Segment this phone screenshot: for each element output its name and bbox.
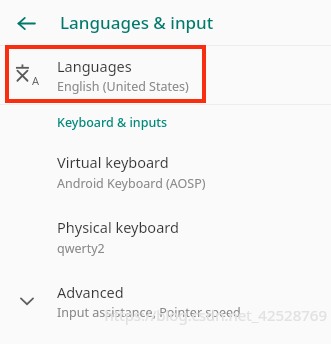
- button[interactable]: A: [0, 46, 331, 104]
- staticText: Keyboard & inputs: [57, 114, 168, 131]
- staticText: Input assistance, Pointer speed: [57, 304, 241, 321]
- button[interactable]: Back: [8, 5, 44, 41]
- staticText: https://blog.csdn.net_42528769: [104, 305, 327, 325]
- staticText: English (United States): [57, 78, 189, 95]
- staticText: Android Keyboard (AOSP): [57, 175, 206, 192]
- staticText: Languages: [57, 56, 132, 76]
- staticText: Languages & input: [60, 11, 214, 34]
- button[interactable]: Physical keyboard: [0, 204, 331, 269]
- staticText: Physical keyboard: [57, 217, 179, 237]
- button[interactable]: Virtual keyboard: [0, 139, 331, 204]
- staticText: Virtual keyboard: [57, 152, 169, 172]
- staticText: A: [32, 73, 40, 88]
- staticText: Advanced: [57, 282, 124, 302]
- button[interactable]: Advanced: [0, 269, 331, 333]
- staticText: qwerty2: [57, 240, 105, 257]
